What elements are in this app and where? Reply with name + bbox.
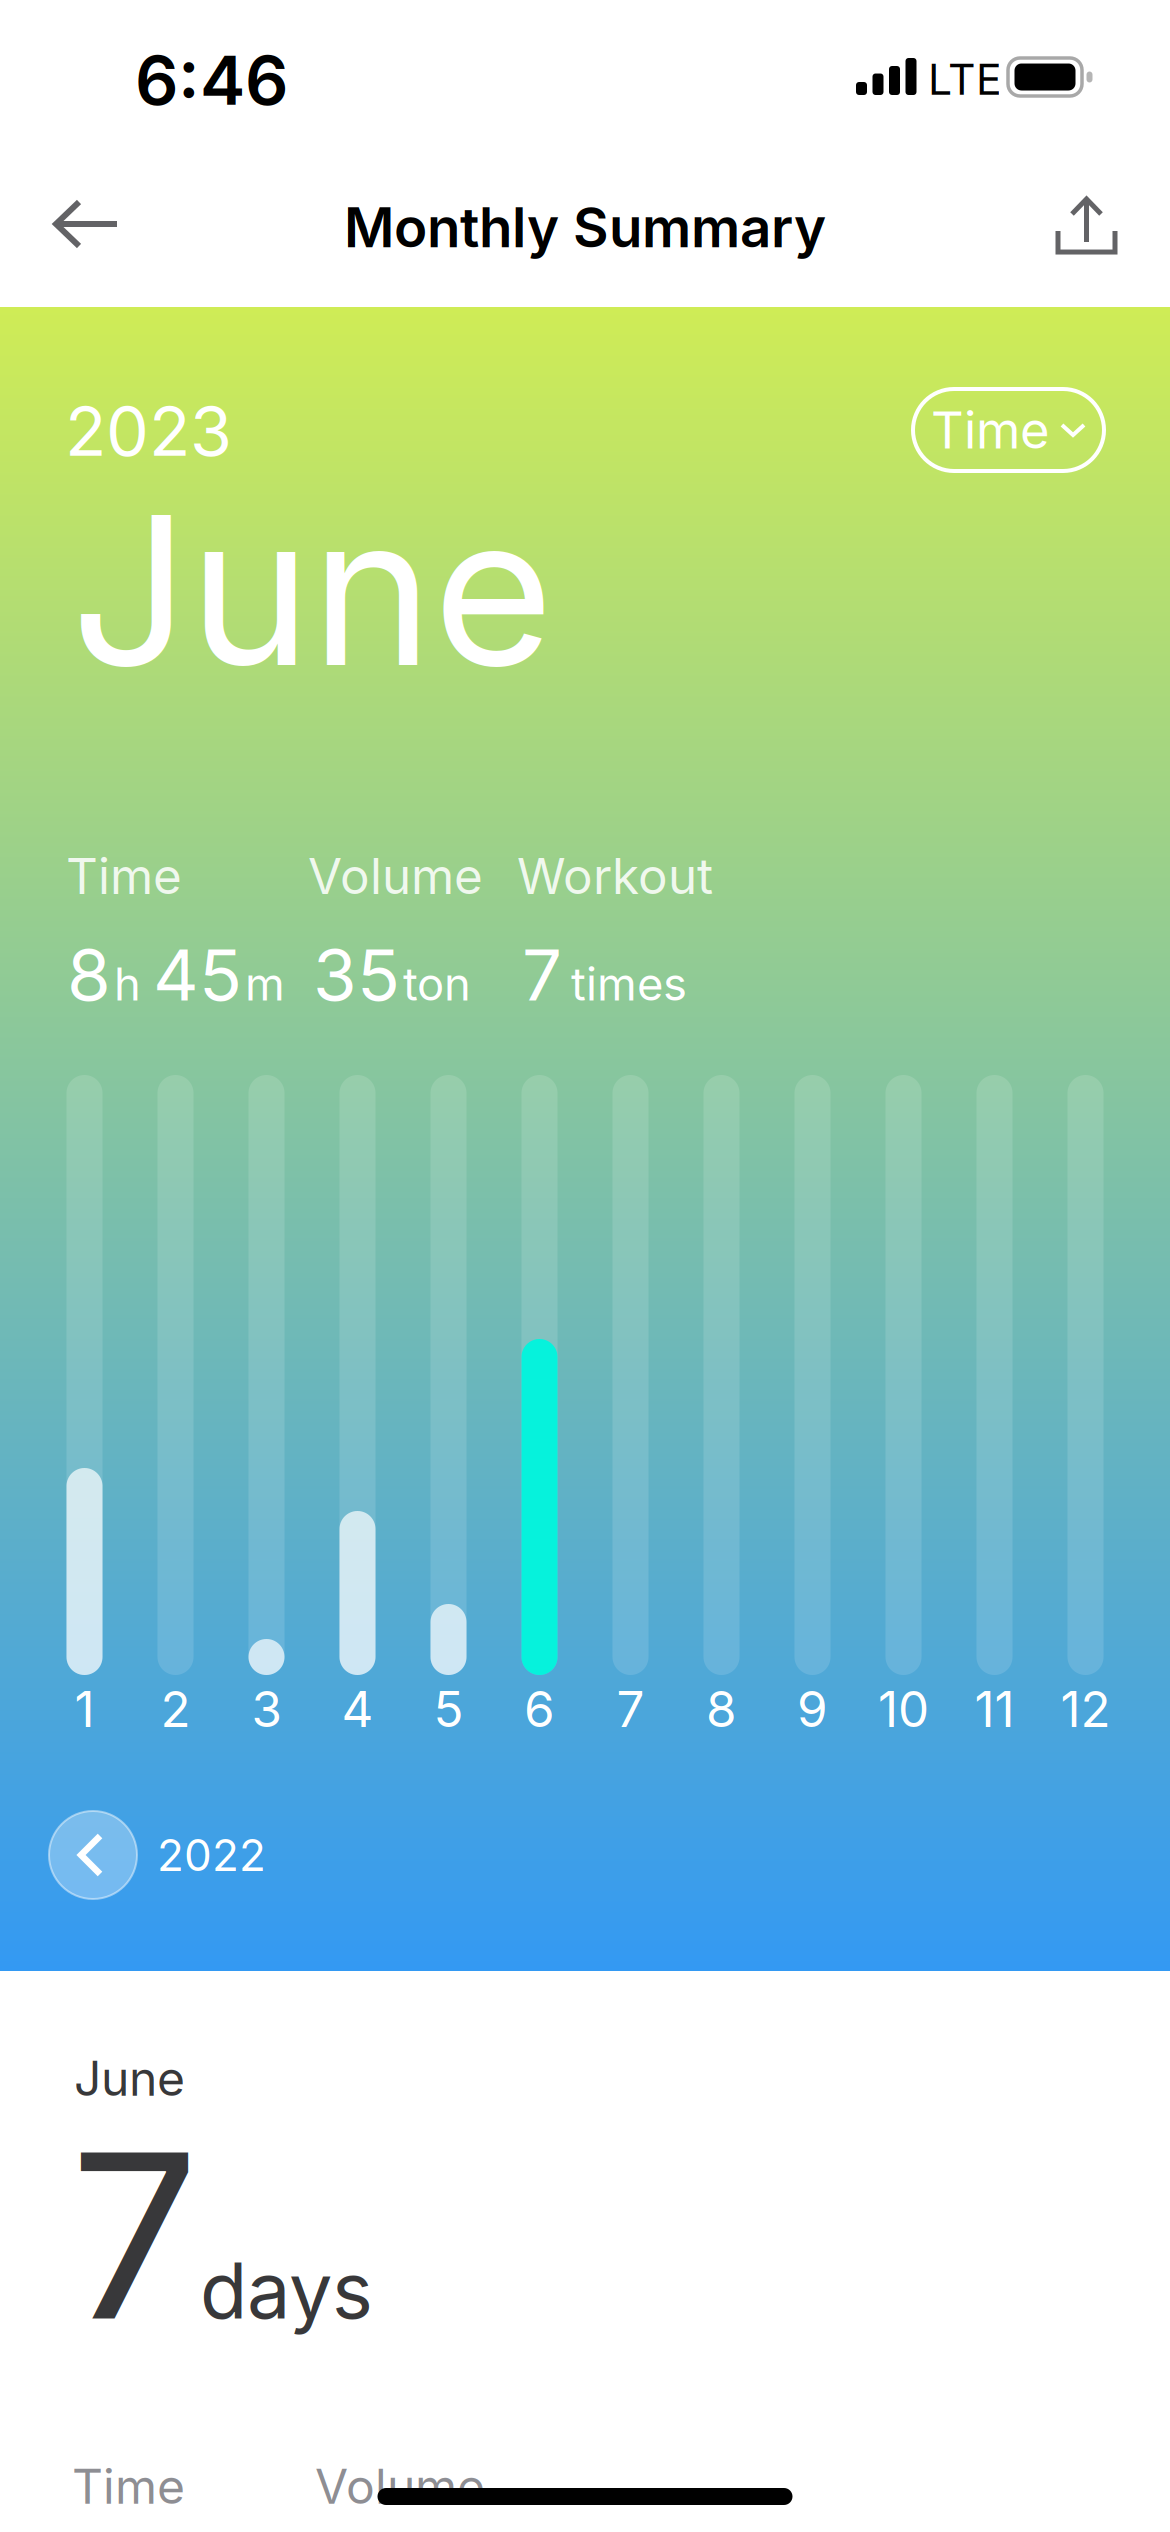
staticText: 2022: [157, 1829, 266, 1881]
staticText: 5: [433, 1680, 463, 1738]
staticText: days: [200, 2245, 373, 2336]
staticText: Time: [931, 400, 1050, 460]
staticText: Workout: [517, 847, 713, 905]
staticText: 3: [251, 1680, 281, 1738]
staticText: m: [245, 957, 285, 1011]
staticText: Volume: [315, 2458, 485, 2515]
staticText: 7: [616, 1680, 644, 1738]
staticText: 7: [70, 2101, 199, 2370]
staticText: 10: [878, 1680, 929, 1738]
staticText: 35: [313, 933, 400, 1016]
staticText: Time: [66, 847, 182, 905]
staticText: 6:46: [135, 40, 288, 120]
staticText: 4: [341, 1680, 373, 1738]
staticText: LTE: [928, 54, 1002, 104]
button[interactable]: 2022: [49, 1811, 266, 1899]
staticText: 7: [522, 933, 562, 1016]
staticText: 8: [706, 1680, 737, 1738]
staticText: 11: [974, 1680, 1014, 1738]
staticText: 2: [160, 1680, 190, 1738]
staticText: Volume: [308, 847, 483, 905]
staticText: h: [114, 957, 141, 1011]
staticText: 2023: [65, 391, 232, 471]
button[interactable]: Time: [913, 389, 1104, 471]
button[interactable]: Share: [1028, 168, 1138, 278]
staticText: Time: [72, 2458, 185, 2515]
staticText: times: [571, 957, 687, 1011]
staticText: 6: [524, 1680, 555, 1738]
button[interactable]: Back: [30, 170, 140, 280]
staticText: Monthly Summary: [344, 195, 826, 259]
staticText: 9: [797, 1680, 828, 1738]
staticText: June: [71, 468, 553, 712]
staticText: June: [74, 2050, 185, 2107]
staticText: 12: [1060, 1680, 1110, 1738]
staticText: ton: [403, 957, 471, 1011]
staticText: 45: [153, 933, 242, 1016]
staticText: 8: [67, 933, 111, 1016]
staticText: 1: [74, 1680, 94, 1738]
